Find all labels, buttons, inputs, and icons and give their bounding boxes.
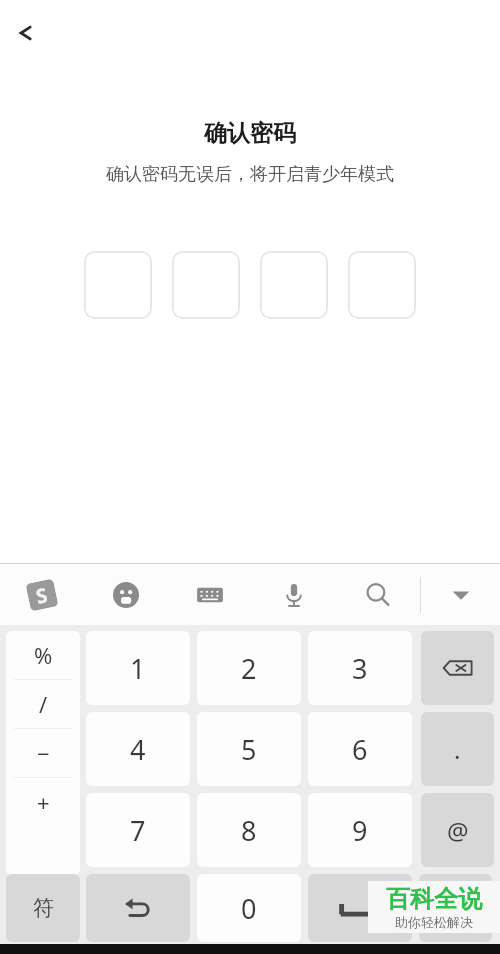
staticText: 助你轻松解决 [395,914,473,930]
button[interactable]: Voice input [252,564,336,625]
button[interactable]: 9 [308,793,412,867]
staticText: 符 [33,895,54,921]
staticText: 1 [130,650,146,687]
staticText: 确认密码 [204,119,296,148]
staticText: 确认密码无误后，将开启青少年模式 [106,163,394,186]
button[interactable]: Emoji [84,564,168,625]
button[interactable]: 4 [86,712,190,786]
button[interactable]: Symbol % [6,631,80,679]
button[interactable]: @ [421,793,494,867]
button[interactable]: 6 [308,712,412,786]
staticText: % [34,640,53,670]
staticText: 3 [352,650,368,687]
staticText: 7 [130,812,146,849]
button[interactable]: 2 [197,631,301,705]
button[interactable]: . [421,712,494,786]
button[interactable]: Return [86,874,190,942]
button[interactable]: 1 [86,631,190,705]
staticText: 6 [352,731,368,768]
button[interactable]: 3 [308,631,412,705]
button[interactable]: Search [336,564,420,625]
button[interactable]: Password digit 3 [260,251,328,319]
button[interactable]: Password digit 1 [84,251,152,319]
staticText: − [37,738,50,768]
button[interactable]: 0 [197,874,301,942]
button[interactable]: Space [308,874,412,942]
button[interactable]: Enter [419,874,492,942]
staticText: . [454,733,461,766]
button[interactable]: Back [4,13,44,53]
staticText: 2 [241,650,257,687]
staticText: + [37,787,50,817]
button[interactable]: Symbol / [6,680,80,728]
staticText: 5 [241,731,257,768]
button[interactable]: Keyboard layout [168,564,252,625]
staticText: 9 [352,812,368,849]
button[interactable]: 8 [197,793,301,867]
button[interactable]: 7 [86,793,190,867]
staticText: S [33,581,51,610]
button[interactable]: Symbol + [6,778,80,826]
button[interactable]: Password digit 4 [348,251,416,319]
button[interactable]: Sogou input [0,564,84,625]
staticText: @ [447,814,469,847]
button[interactable]: 5 [197,712,301,786]
button[interactable]: 符 [6,874,80,942]
staticText: 8 [241,812,257,849]
button[interactable]: Hide keyboard [421,564,500,625]
button[interactable]: Password digit 2 [172,251,240,319]
button[interactable]: Delete [421,631,494,705]
staticText: / [39,689,48,719]
button[interactable]: Symbol − [6,729,80,777]
staticText: 百科全说 [386,884,482,914]
staticText: 4 [130,731,146,768]
staticText: 0 [241,890,257,927]
